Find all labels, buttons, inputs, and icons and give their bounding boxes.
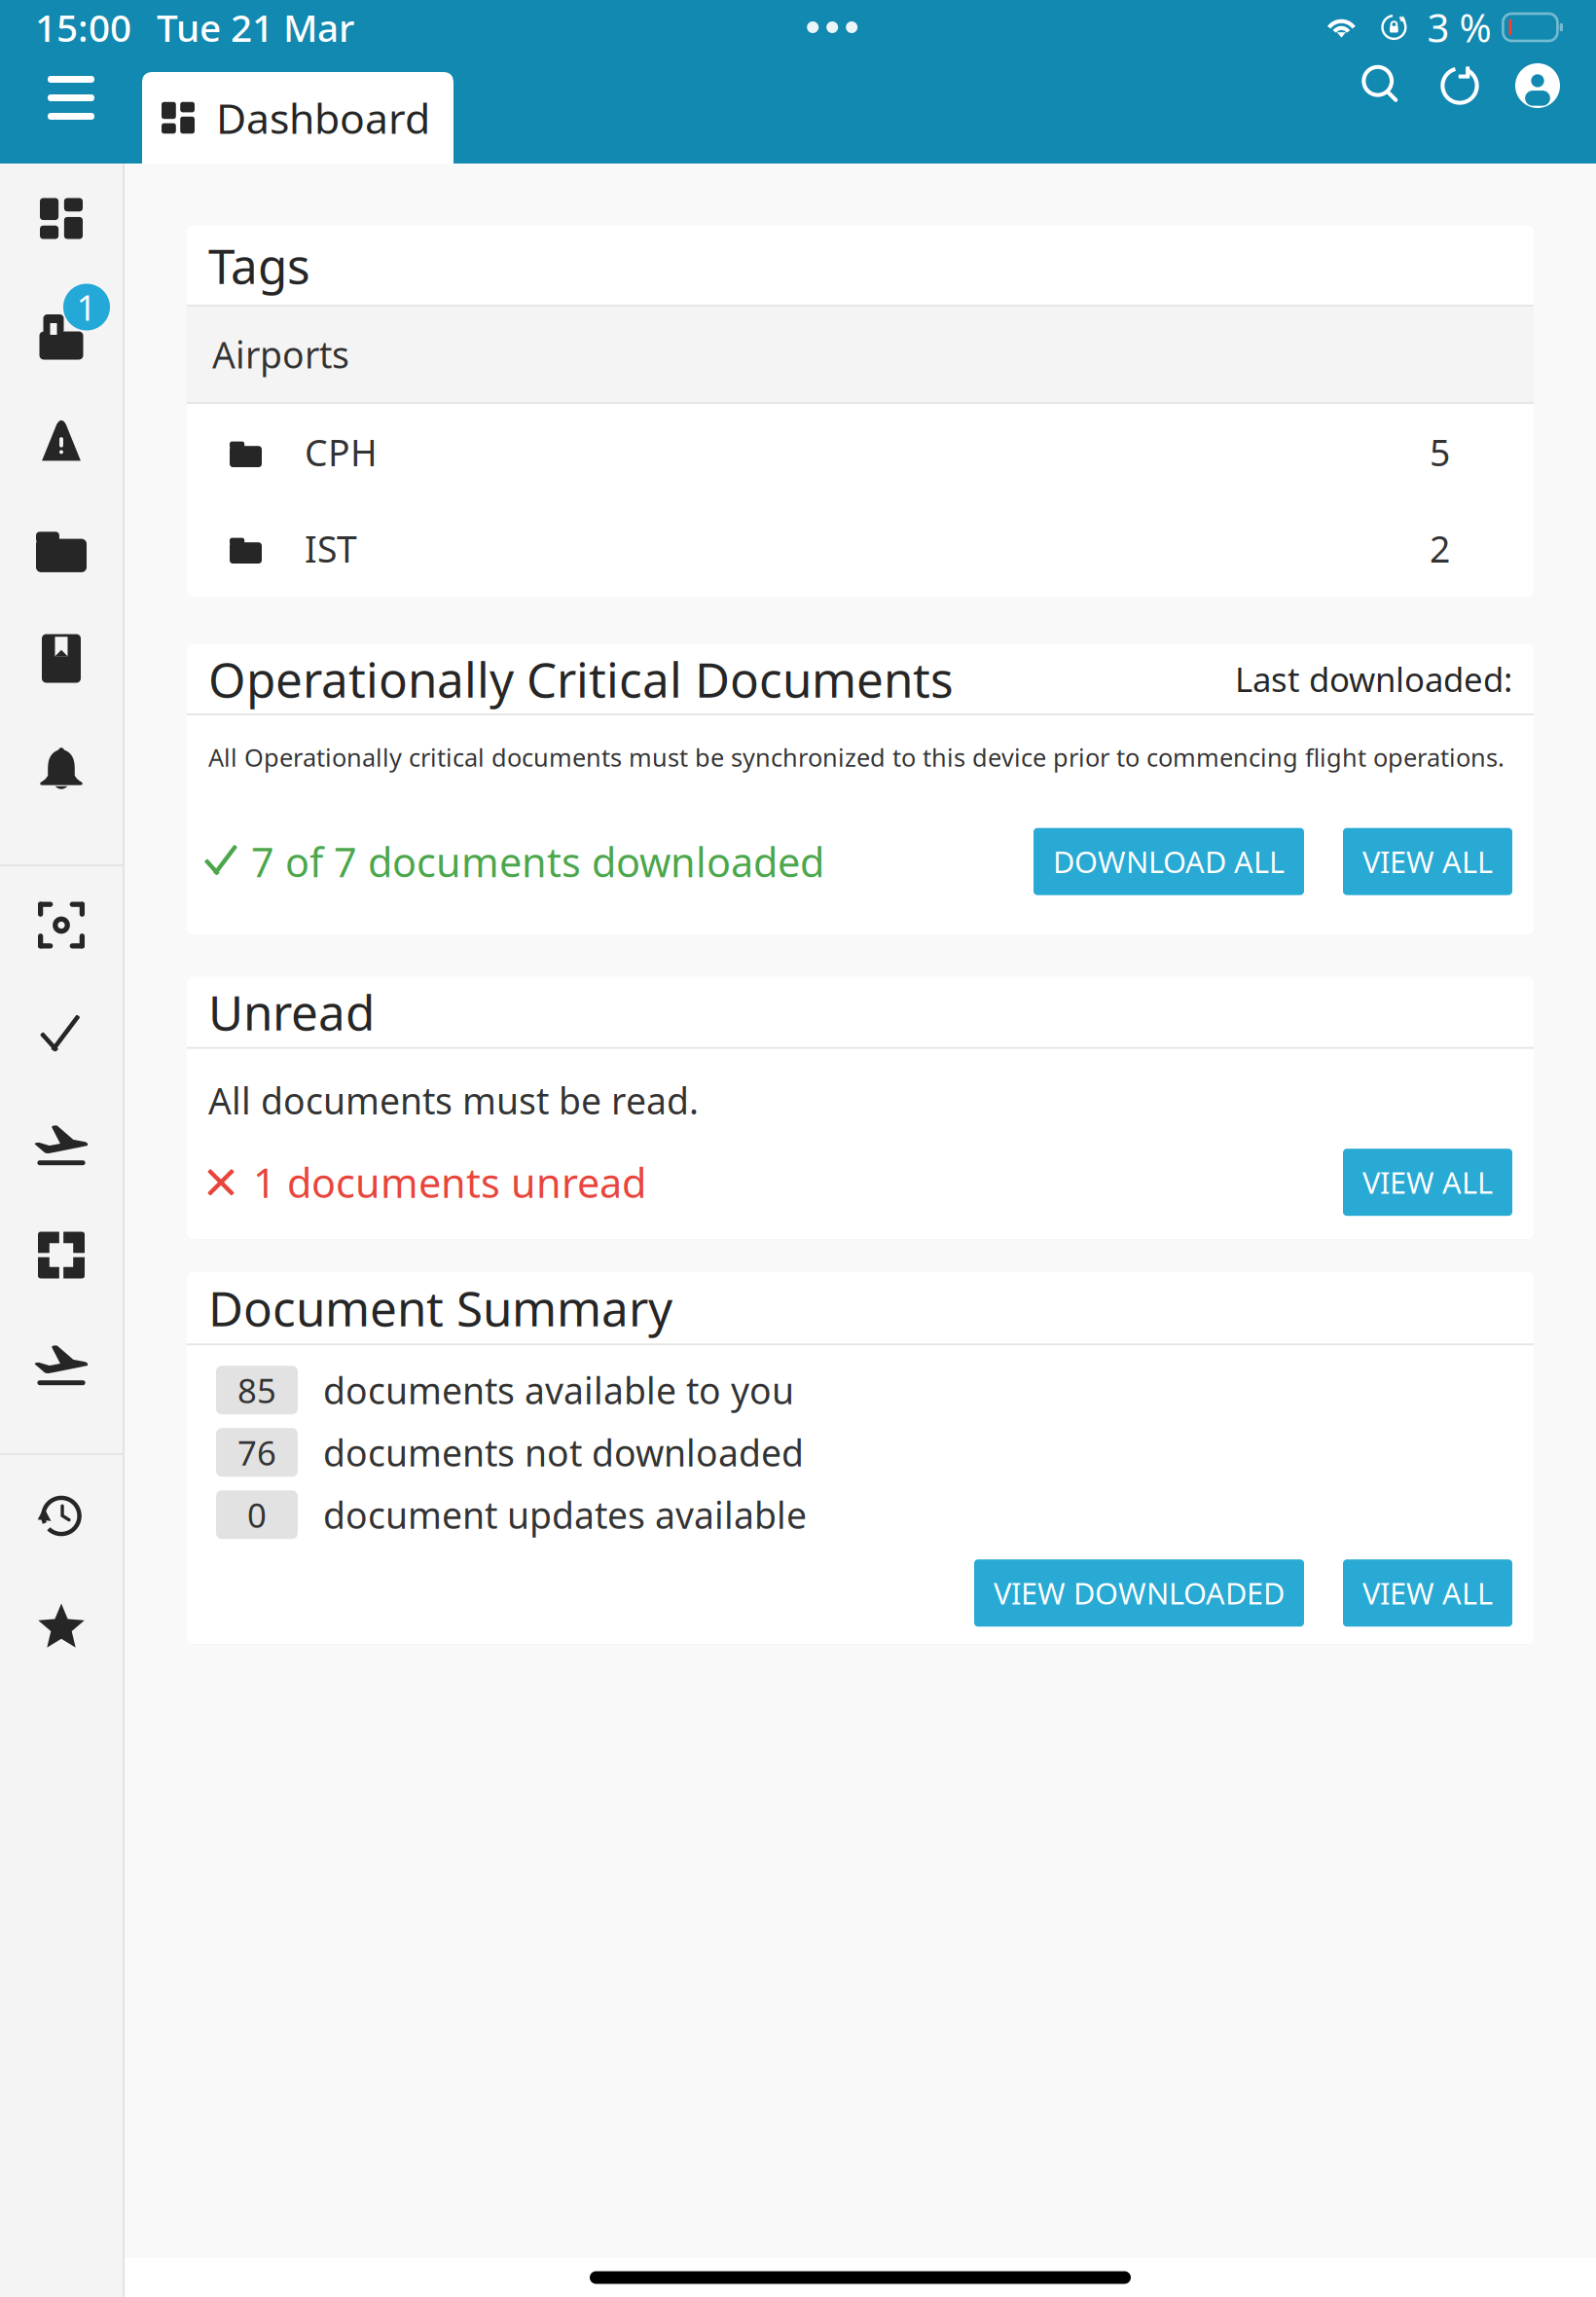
button[interactable]: Search [1343,55,1421,164]
staticText: 7 of 7 documents downloaded [251,835,824,888]
staticText: 85 [237,1368,276,1412]
button[interactable]: VIEW ALL [1343,1559,1512,1627]
button[interactable]: Favourites [0,1571,123,1681]
staticText: 2 [1430,524,1450,573]
button[interactable]: Menu [0,55,142,164]
staticText: Tue 21 Mar [157,2,354,52]
button[interactable]: Account [1499,55,1577,164]
button[interactable]: CPH [187,404,1534,500]
button[interactable]: VIEW DOWNLOADED [974,1559,1304,1627]
staticText: CPH [305,428,378,476]
button[interactable]: VIEW ALL [1343,828,1512,895]
staticText: 1 documents unread [253,1156,646,1209]
button[interactable]: Expand [0,1200,123,1310]
button[interactable]: Alerts [0,383,123,493]
button[interactable]: Dashboard [142,72,453,164]
button[interactable]: Departures [0,1310,123,1420]
button[interactable]: Bookmarks [0,603,123,713]
staticText: VIEW ALL [1362,1573,1493,1613]
staticText: VIEW ALL [1362,1163,1493,1202]
staticText: All documents must be read. [208,1076,699,1124]
button[interactable]: Dashboard [0,164,123,273]
button[interactable]: Notifications [0,713,123,823]
staticText: 76 [237,1430,276,1475]
staticText: documents available to you [323,1366,794,1414]
button[interactable]: Scan [0,870,123,980]
staticText: Unread [208,980,375,1044]
button[interactable]: Checklist [0,980,123,1090]
staticText: IST [305,524,357,573]
button[interactable]: Folders [0,493,123,603]
staticText: 3 % [1427,1,1491,53]
staticText: 5 [1430,428,1450,476]
button[interactable]: VIEW ALL [1343,1149,1512,1216]
staticText: documents not downloaded [323,1428,804,1477]
staticText: 15:00 [35,2,131,52]
button[interactable]: IST [187,500,1534,597]
staticText: Document Summary [208,1276,672,1340]
staticText: VIEW ALL [1362,842,1493,881]
staticText: DOWNLOAD ALL [1053,842,1285,881]
button[interactable]: History [0,1461,123,1571]
button[interactable]: DOWNLOAD ALL [1034,828,1304,895]
staticText: VIEW DOWNLOADED [994,1573,1285,1613]
staticText: Operationally Critical Documents [208,647,954,711]
staticText: All Operationally critical documents mus… [208,741,1505,773]
staticText: Tags [208,233,310,297]
staticText: 0 [247,1492,267,1537]
staticText: Last downloaded: [1235,656,1512,701]
staticText: Airports [212,330,349,378]
staticText: 1 [76,284,97,330]
staticText: document updates available [323,1491,807,1539]
button[interactable]: Arrivals [0,1090,123,1200]
button[interactable]: Refresh [1421,55,1499,164]
staticText: Dashboard [216,90,430,145]
button[interactable]: Briefcase [0,273,123,383]
